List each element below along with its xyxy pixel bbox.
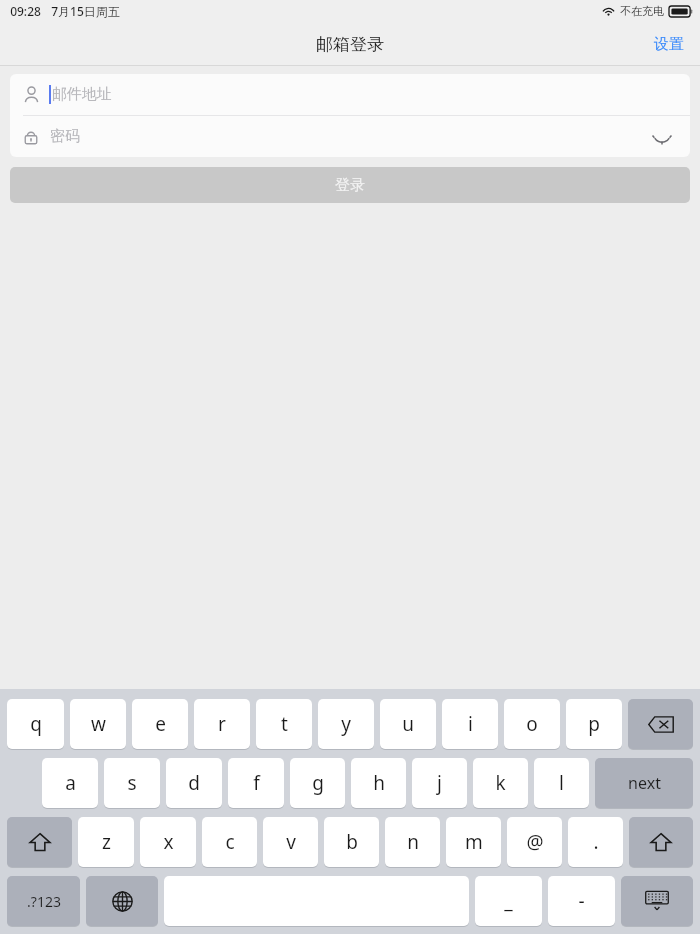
staticText: 密码 <box>50 127 80 146</box>
button[interactable]: r <box>194 699 250 749</box>
button[interactable]: s <box>104 758 160 808</box>
button[interactable]: @ <box>507 817 562 867</box>
staticText: 设置 <box>654 35 684 54</box>
staticText: 不在充电 <box>620 4 664 18</box>
button[interactable]: e <box>132 699 188 749</box>
staticText: n <box>407 829 419 855</box>
button[interactable]: 设置 <box>638 25 700 64</box>
staticText: @ <box>526 829 544 855</box>
button[interactable]: 邮件地址 <box>10 74 690 115</box>
button[interactable]: o <box>504 699 560 749</box>
button[interactable]: i <box>442 699 498 749</box>
staticText: - <box>578 888 585 914</box>
button[interactable]: p <box>566 699 622 749</box>
button[interactable]: t <box>256 699 312 749</box>
staticText: x <box>163 829 174 855</box>
button[interactable]: m <box>446 817 501 867</box>
staticText: e <box>155 711 166 737</box>
button[interactable]: Shift <box>629 817 693 867</box>
button[interactable]: b <box>324 817 379 867</box>
staticText: b <box>346 829 358 855</box>
staticText: s <box>127 770 137 796</box>
button[interactable]: v <box>263 817 318 867</box>
button[interactable]: _ <box>475 876 542 926</box>
button[interactable]: Change keyboard <box>86 876 158 926</box>
button[interactable]: .?123 <box>7 876 80 926</box>
staticText: 09:28 <box>10 3 41 19</box>
button[interactable]: q <box>7 699 64 749</box>
button[interactable]: Shift <box>7 817 72 867</box>
staticText: j <box>437 770 442 796</box>
staticText: y <box>341 711 351 737</box>
staticText: w <box>91 711 106 737</box>
staticText: 邮箱登录 <box>316 34 384 55</box>
button[interactable]: y <box>318 699 374 749</box>
button[interactable]: Show password <box>647 122 677 152</box>
button[interactable]: Hide keyboard <box>621 876 693 926</box>
button[interactable]: - <box>548 876 615 926</box>
staticText: u <box>402 711 414 737</box>
staticText: z <box>102 829 111 855</box>
button[interactable]: a <box>42 758 98 808</box>
button[interactable]: 登录 <box>10 167 690 203</box>
button[interactable]: u <box>380 699 436 749</box>
button[interactable]: g <box>290 758 345 808</box>
staticText: l <box>559 770 564 796</box>
button[interactable]: d <box>166 758 222 808</box>
staticText: .?123 <box>27 892 61 911</box>
staticText: next <box>628 772 661 794</box>
staticText: p <box>588 711 600 737</box>
button[interactable]: h <box>351 758 406 808</box>
staticText: o <box>526 711 538 737</box>
staticText: v <box>286 829 296 855</box>
button[interactable]: z <box>78 817 134 867</box>
button[interactable]: w <box>70 699 126 749</box>
staticText: a <box>65 770 76 796</box>
button[interactable]: 密码 <box>10 116 690 157</box>
button[interactable]: . <box>568 817 623 867</box>
staticText: r <box>218 711 226 737</box>
button[interactable]: k <box>473 758 528 808</box>
button[interactable]: Backspace <box>628 699 693 749</box>
staticText: 7月15日周五 <box>51 3 120 19</box>
staticText: 登录 <box>335 176 365 195</box>
staticText: h <box>373 770 385 796</box>
staticText: . <box>593 829 599 855</box>
button[interactable]: n <box>385 817 440 867</box>
staticText: t <box>281 711 288 737</box>
staticText: _ <box>504 888 513 914</box>
button[interactable]: j <box>412 758 467 808</box>
staticText: f <box>253 770 260 796</box>
button[interactable]: c <box>202 817 257 867</box>
staticText: k <box>495 770 506 796</box>
staticText: c <box>225 829 235 855</box>
button[interactable]: f <box>228 758 284 808</box>
staticText: g <box>312 770 324 796</box>
staticText: 邮件地址 <box>52 85 112 104</box>
staticText: d <box>188 770 200 796</box>
button[interactable]: next <box>595 758 693 808</box>
staticText: i <box>468 711 473 737</box>
staticText: q <box>30 711 42 737</box>
staticText: m <box>465 829 483 855</box>
button[interactable]: x <box>140 817 196 867</box>
button[interactable]: l <box>534 758 589 808</box>
